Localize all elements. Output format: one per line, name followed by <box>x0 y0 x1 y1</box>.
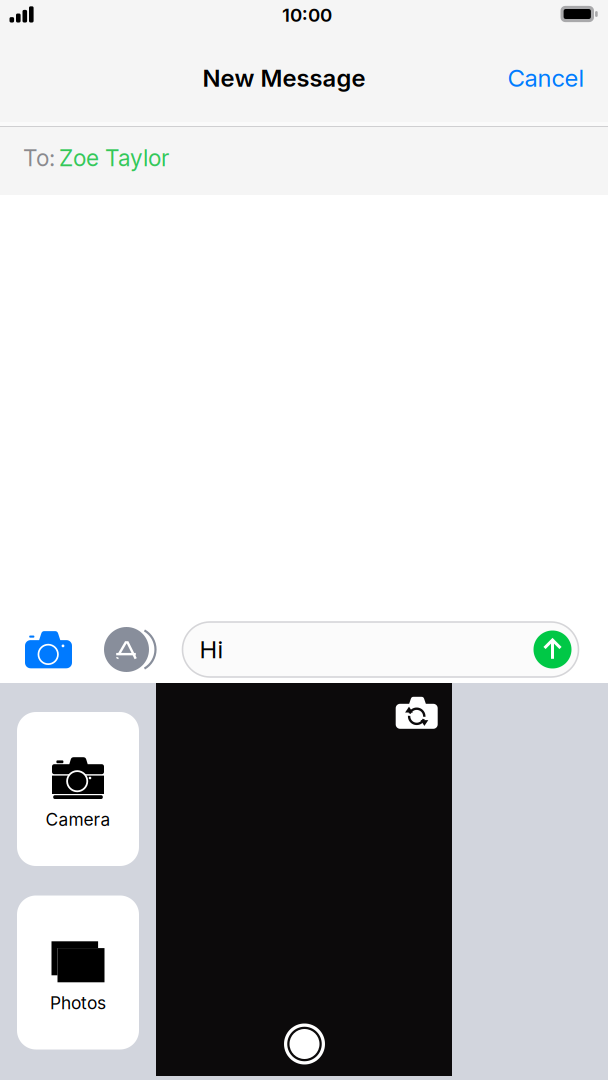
staticText: Hi <box>199 635 223 664</box>
button[interactable]: Switch Camera <box>391 691 443 735</box>
staticText: Zoe Taylor <box>59 144 169 172</box>
button[interactable]: Photos <box>17 895 139 1049</box>
button[interactable]: Camera <box>17 712 139 866</box>
button[interactable]: Cancel <box>491 47 601 109</box>
staticText: 10:00 <box>282 4 332 26</box>
button[interactable]: Camera <box>20 622 76 676</box>
staticText: Cancel <box>507 63 584 92</box>
button[interactable]: App Store <box>99 623 153 675</box>
button[interactable]: Take Photo <box>278 1018 330 1070</box>
staticText: Photos <box>50 992 106 1013</box>
button[interactable]: Send <box>530 627 574 671</box>
staticText: Camera <box>45 809 110 830</box>
staticText: To: <box>23 144 55 172</box>
staticText: New Message <box>202 63 365 92</box>
